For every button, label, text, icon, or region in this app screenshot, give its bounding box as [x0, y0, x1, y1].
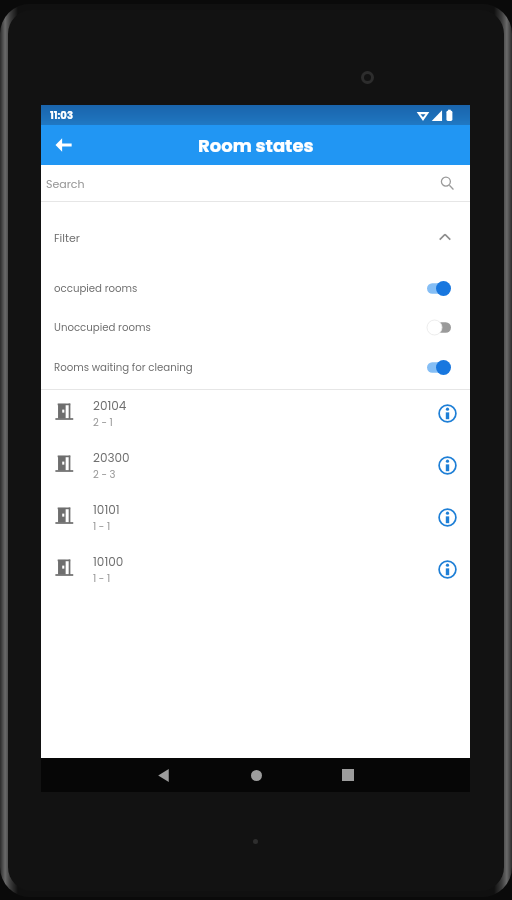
staticText: 20104 [93, 397, 127, 414]
button[interactable]: 10101 [41, 492, 470, 544]
button[interactable]: Back [46, 128, 80, 162]
staticText: Search [46, 176, 85, 191]
button[interactable]: Room info [435, 453, 459, 477]
button[interactable]: 20104 [41, 388, 470, 440]
staticText: 20300 [93, 449, 130, 466]
staticText: 10101 [93, 501, 120, 518]
button[interactable]: Recent apps [331, 758, 365, 792]
staticText: 11:03 [50, 108, 73, 122]
button[interactable]: Search [41, 165, 470, 201]
staticText: Room states [198, 133, 314, 158]
button[interactable]: Filter [41, 202, 470, 274]
staticText: Unoccupied rooms [54, 320, 151, 334]
button[interactable]: 10100 [41, 544, 470, 596]
staticText: 2 - 3 [93, 467, 116, 481]
button[interactable]: Rooms waiting for cleaning [41, 347, 470, 386]
staticText: occupied rooms [54, 281, 138, 295]
button[interactable]: occupied rooms [41, 268, 470, 307]
staticText: Filter [54, 230, 80, 245]
button[interactable]: Room info [435, 557, 459, 581]
button[interactable]: Home [239, 758, 273, 792]
staticText: 1 - 1 [93, 519, 111, 533]
button[interactable]: Unoccupied rooms [41, 307, 470, 346]
staticText: 1 - 1 [93, 571, 111, 585]
button[interactable]: Room info [435, 401, 459, 425]
button[interactable]: 20300 [41, 440, 470, 492]
staticText: 10100 [93, 553, 124, 570]
staticText: 2 - 1 [93, 415, 113, 429]
staticText: Rooms waiting for cleaning [54, 360, 193, 374]
button[interactable]: Room info [435, 505, 459, 529]
button[interactable]: Back [146, 758, 180, 792]
